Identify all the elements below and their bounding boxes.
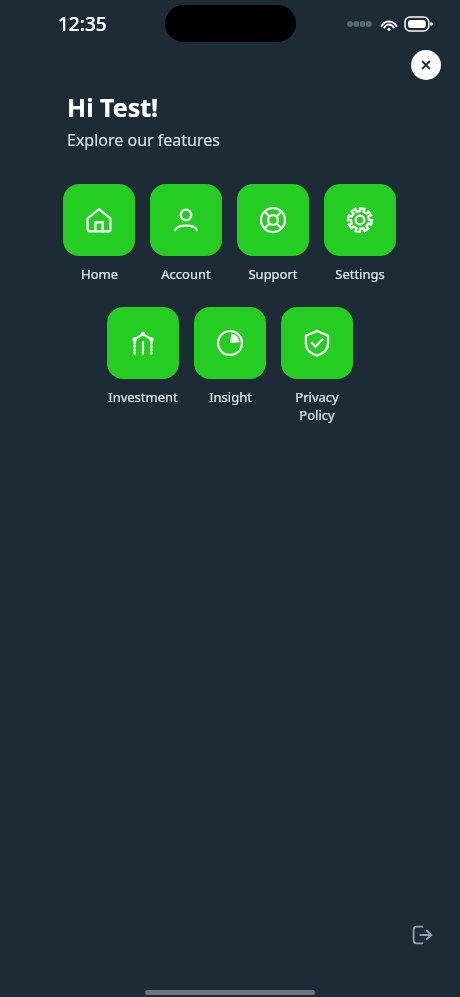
staticText: Explore our features bbox=[67, 129, 220, 151]
staticText: Support bbox=[248, 265, 298, 283]
button[interactable]: Close bbox=[411, 50, 441, 80]
button[interactable]: Privacy Policy bbox=[281, 307, 353, 424]
button[interactable]: Insight bbox=[194, 307, 266, 406]
staticText: 12:35 bbox=[58, 11, 107, 37]
staticText: Account bbox=[161, 265, 211, 283]
button[interactable]: Home bbox=[63, 184, 135, 283]
staticText: Privacy Policy bbox=[281, 388, 353, 424]
button[interactable]: Account bbox=[150, 184, 222, 283]
button[interactable]: Support bbox=[237, 184, 309, 283]
button[interactable]: Log out bbox=[402, 915, 442, 955]
staticText: Insight bbox=[209, 388, 252, 406]
staticText: Settings bbox=[335, 265, 385, 283]
staticText: Investment bbox=[108, 388, 178, 406]
button[interactable]: Investment bbox=[107, 307, 179, 406]
staticText: Home bbox=[81, 265, 118, 283]
staticText: Hi Test! bbox=[67, 90, 159, 124]
button[interactable]: Settings bbox=[324, 184, 396, 283]
